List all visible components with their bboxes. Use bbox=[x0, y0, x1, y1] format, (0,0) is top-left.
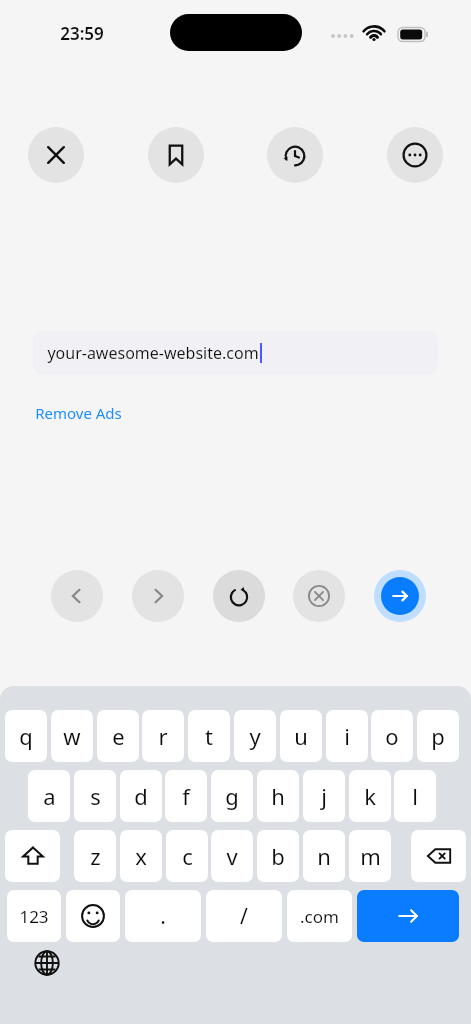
button[interactable]: Forward bbox=[132, 570, 184, 622]
button[interactable]: m bbox=[349, 830, 391, 882]
button[interactable]: Reload bbox=[213, 570, 265, 622]
staticText: . bbox=[160, 902, 166, 931]
button[interactable]: Close bbox=[28, 127, 84, 183]
staticText: p bbox=[431, 721, 445, 751]
button[interactable]: d bbox=[120, 770, 162, 822]
staticText: w bbox=[63, 721, 81, 751]
button[interactable]: t bbox=[188, 710, 230, 762]
staticText: y bbox=[249, 721, 261, 751]
staticText: e bbox=[112, 721, 125, 751]
button[interactable]: c bbox=[166, 830, 208, 882]
button[interactable]: your-awesome-website.com bbox=[33, 331, 438, 375]
staticText: o bbox=[385, 721, 399, 751]
button[interactable]: w bbox=[51, 710, 93, 762]
staticText: b bbox=[271, 841, 285, 871]
button[interactable]: h bbox=[257, 770, 299, 822]
button[interactable]: a bbox=[28, 770, 70, 822]
staticText: r bbox=[158, 721, 168, 751]
button[interactable]: v bbox=[211, 830, 253, 882]
button[interactable]: Go bbox=[374, 570, 426, 622]
staticText: c bbox=[182, 841, 193, 871]
button[interactable]: l bbox=[394, 770, 436, 822]
button[interactable]: More options bbox=[387, 127, 443, 183]
button[interactable]: .com bbox=[287, 890, 352, 942]
staticText: .com bbox=[300, 905, 339, 928]
staticText: l bbox=[412, 781, 418, 811]
staticText: x bbox=[135, 841, 147, 871]
staticText: g bbox=[225, 781, 239, 811]
button[interactable]: p bbox=[417, 710, 459, 762]
staticText: s bbox=[90, 781, 101, 811]
button[interactable]: Back bbox=[51, 570, 103, 622]
staticText: d bbox=[134, 781, 148, 811]
button[interactable]: i bbox=[326, 710, 368, 762]
button[interactable]: / bbox=[206, 890, 282, 942]
button[interactable]: Shift bbox=[5, 830, 60, 882]
staticText: k bbox=[364, 781, 376, 811]
staticText: h bbox=[271, 781, 285, 811]
staticText: t bbox=[205, 721, 213, 751]
button[interactable]: r bbox=[142, 710, 184, 762]
button[interactable]: o bbox=[371, 710, 413, 762]
staticText: z bbox=[90, 841, 101, 871]
button[interactable]: Go bbox=[357, 890, 459, 942]
button[interactable]: s bbox=[74, 770, 116, 822]
button[interactable]: j bbox=[303, 770, 345, 822]
button[interactable]: Bookmarks bbox=[148, 127, 204, 183]
button[interactable]: e bbox=[97, 710, 139, 762]
staticText: i bbox=[344, 721, 350, 751]
staticText: u bbox=[294, 721, 308, 751]
staticText: / bbox=[240, 902, 248, 931]
button[interactable]: Remove Ads bbox=[33, 401, 124, 425]
button[interactable]: f bbox=[165, 770, 207, 822]
staticText: 23:59 bbox=[60, 22, 104, 45]
button[interactable]: . bbox=[125, 890, 201, 942]
button[interactable]: k bbox=[349, 770, 391, 822]
button[interactable]: g bbox=[211, 770, 253, 822]
staticText: your-awesome-website.com bbox=[47, 342, 259, 364]
button[interactable]: x bbox=[120, 830, 162, 882]
staticText: v bbox=[226, 841, 238, 871]
staticText: j bbox=[321, 781, 327, 811]
button[interactable]: Clear bbox=[293, 570, 345, 622]
button[interactable]: 123 bbox=[7, 890, 61, 942]
button[interactable]: q bbox=[5, 710, 47, 762]
staticText: a bbox=[43, 781, 56, 811]
staticText: 123 bbox=[19, 905, 49, 928]
button[interactable]: n bbox=[303, 830, 345, 882]
staticText: q bbox=[19, 721, 33, 751]
button[interactable]: u bbox=[280, 710, 322, 762]
button[interactable]: y bbox=[234, 710, 276, 762]
button[interactable]: z bbox=[74, 830, 116, 882]
staticText: m bbox=[360, 841, 381, 871]
staticText: f bbox=[182, 781, 190, 811]
button[interactable]: Change keyboard language bbox=[28, 944, 66, 982]
button[interactable]: History bbox=[267, 127, 323, 183]
staticText: n bbox=[317, 841, 331, 871]
staticText: Remove Ads bbox=[35, 403, 122, 423]
button[interactable]: Emoji bbox=[66, 890, 120, 942]
button[interactable]: b bbox=[257, 830, 299, 882]
button[interactable]: Backspace bbox=[411, 830, 466, 882]
